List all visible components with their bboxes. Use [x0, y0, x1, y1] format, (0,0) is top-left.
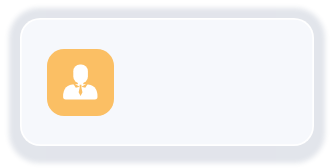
- button[interactable]: Profile: [47, 49, 114, 116]
